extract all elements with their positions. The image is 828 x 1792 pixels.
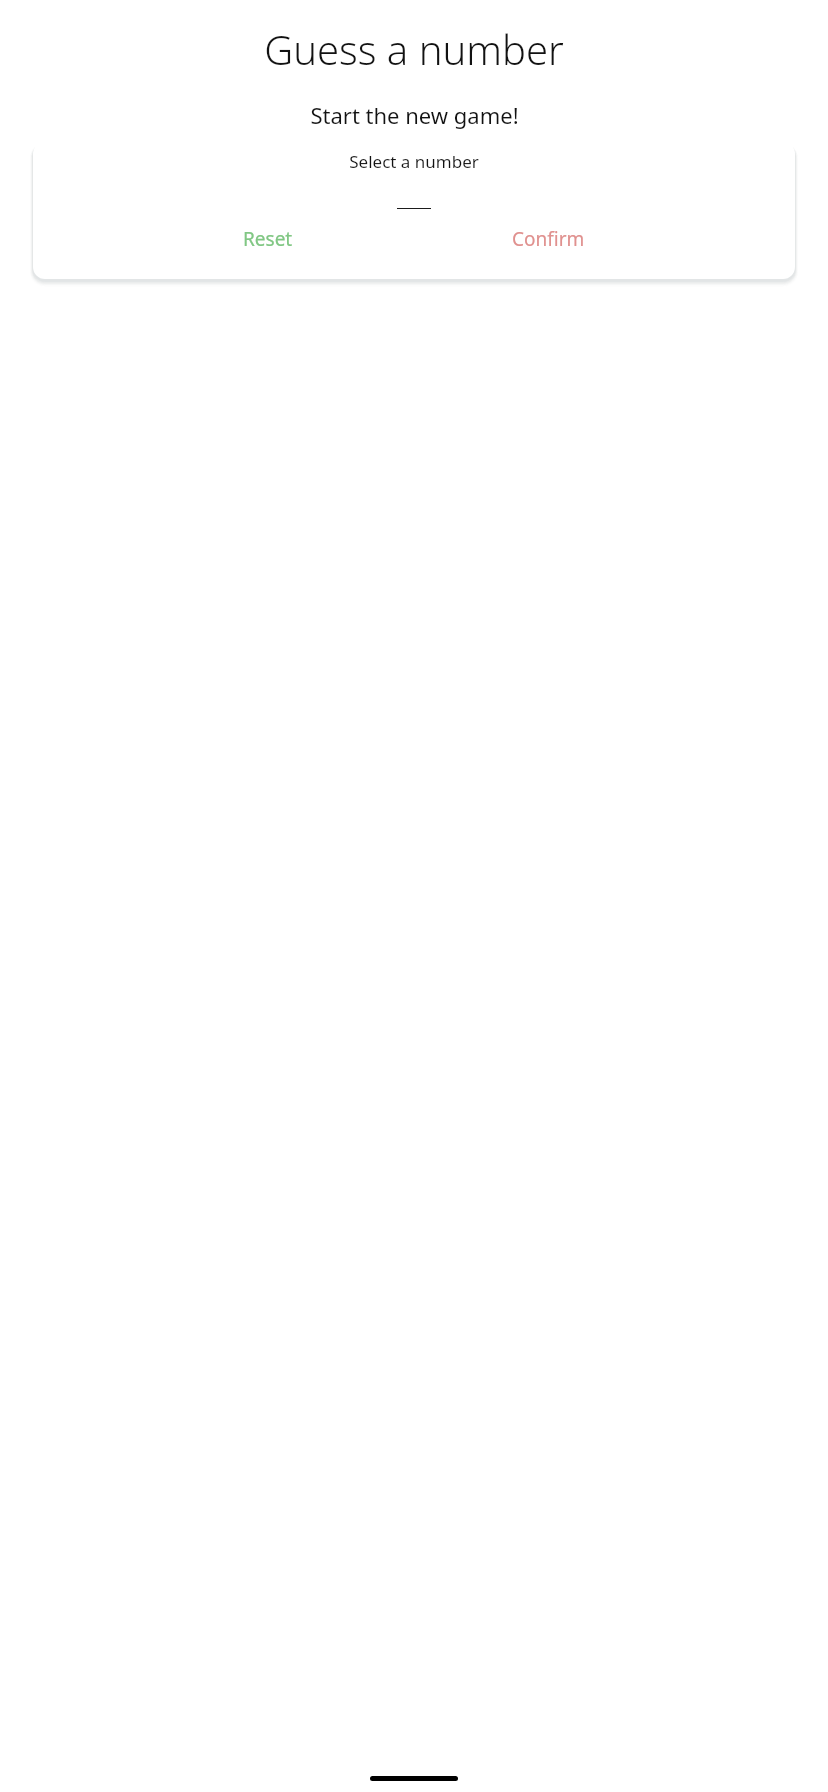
button[interactable]: Reset (235, 220, 301, 258)
staticText: Select a number (349, 150, 479, 173)
staticText: Reset (243, 226, 293, 252)
staticText: Start the new game! (310, 100, 519, 130)
staticText: Guess a number (264, 22, 564, 76)
staticText: Confirm (512, 226, 585, 252)
button[interactable]: Confirm (504, 220, 593, 258)
